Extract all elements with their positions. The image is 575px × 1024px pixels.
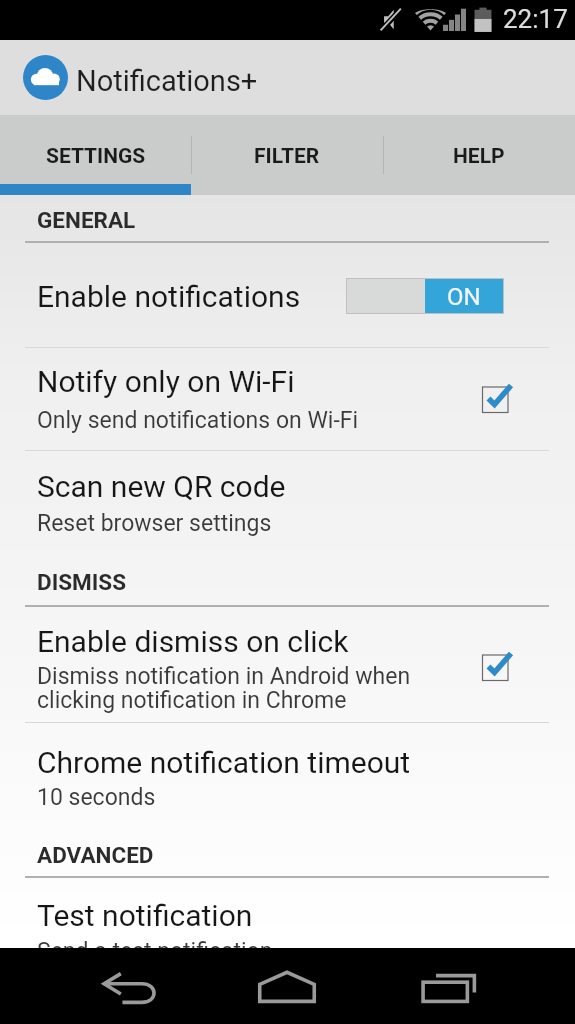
button[interactable]: Enable dismiss on click <box>0 607 575 722</box>
staticText: Test notification <box>37 898 253 933</box>
button[interactable]: Enable notifications toggle <box>346 278 504 314</box>
button[interactable]: Chrome notification timeout <box>0 723 575 824</box>
button[interactable]: Notify only on Wi-Fi <box>0 348 575 450</box>
staticText: Notifications+ <box>76 64 258 98</box>
staticText: Scan new QR code <box>37 469 286 504</box>
staticText: SETTINGS <box>46 144 146 169</box>
staticText: Enable dismiss on click <box>37 624 349 659</box>
staticText: ADVANCED <box>37 842 154 868</box>
staticText: 22:17 <box>503 4 568 34</box>
staticText: HELP <box>453 144 505 169</box>
staticText: FILTER <box>254 144 320 169</box>
staticText: Enable notifications <box>37 279 301 314</box>
button[interactable]: Home <box>233 956 341 1018</box>
staticText: Chrome notification timeout <box>37 745 411 780</box>
staticText: ON <box>447 283 481 311</box>
button[interactable]: SETTINGS <box>0 115 191 195</box>
staticText: GENERAL <box>37 207 136 233</box>
button[interactable]: Checkbox, checked <box>474 646 518 690</box>
button[interactable]: Test notification <box>0 878 575 952</box>
button[interactable]: Scan new QR code <box>0 451 575 554</box>
staticText: Reset browser settings <box>37 510 272 537</box>
button[interactable]: Recents <box>395 956 503 1018</box>
button[interactable]: Enable notifications <box>0 243 575 347</box>
staticText: Notify only on Wi-Fi <box>37 364 295 399</box>
staticText: 10 seconds <box>37 784 156 811</box>
staticText: Only send notifications on Wi-Fi <box>37 407 359 434</box>
staticText: clicking notification in Chrome <box>37 687 347 714</box>
button[interactable]: Back <box>76 957 184 1019</box>
staticText: Dismiss notification in Android when <box>37 663 411 690</box>
staticText: Send a test notification <box>37 938 273 965</box>
button[interactable]: HELP <box>383 115 575 195</box>
button[interactable]: FILTER <box>191 115 383 195</box>
staticText: DISMISS <box>37 569 126 595</box>
button[interactable]: Checkbox, checked <box>474 378 518 422</box>
